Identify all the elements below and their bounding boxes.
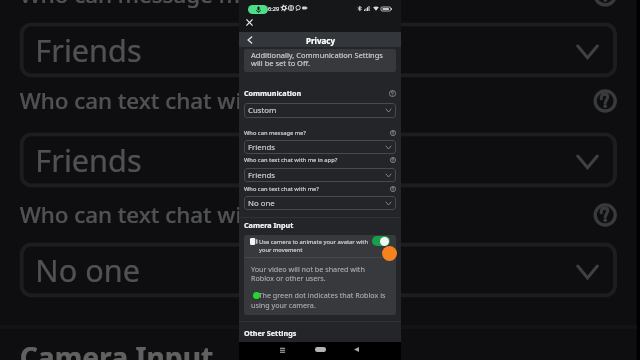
staticText: Privacy (306, 35, 335, 46)
button[interactable]: More info (390, 186, 396, 192)
staticText: Other Settings (244, 328, 297, 338)
button[interactable]: Recents (280, 347, 286, 353)
button[interactable]: More info (593, 203, 617, 227)
staticText: Who can message me? (244, 129, 306, 137)
staticText: Your video will not be shared with Roblo… (251, 264, 389, 283)
button[interactable]: Back (245, 35, 255, 45)
button[interactable]: No one (20, 242, 617, 297)
button[interactable]: More info (390, 157, 396, 163)
button[interactable]: More info (593, 89, 617, 113)
staticText: Communication (244, 88, 302, 98)
staticText: Who can text chat with me in app? (20, 85, 389, 117)
button[interactable]: Home (315, 347, 326, 352)
staticText: Camera Input (244, 220, 294, 230)
staticText: No one (248, 198, 275, 209)
button[interactable]: Back (354, 347, 359, 352)
button[interactable]: Friends (20, 132, 617, 187)
button[interactable]: Close (244, 17, 255, 28)
staticText: Who can text chat with me in app? (244, 156, 338, 164)
staticText: Who can text chat with me? (244, 185, 319, 193)
staticText: Use camera to animate your avatar with y… (259, 238, 369, 254)
staticText: Who can text chat with me? (20, 199, 314, 231)
button[interactable]: Friends (244, 168, 396, 182)
button[interactable]: Use camera toggle (372, 236, 390, 246)
button[interactable]: Friends (20, 22, 617, 77)
staticText: Additionally, Communication Settings wil… (251, 50, 385, 68)
staticText: Friends (248, 170, 276, 181)
button[interactable]: Friends (244, 140, 396, 154)
staticText: Friends (35, 140, 145, 183)
staticText: Custom (248, 105, 277, 116)
button[interactable]: More info (389, 90, 396, 97)
staticText: No one (35, 250, 141, 293)
button[interactable]: Custom (244, 103, 396, 118)
staticText: Friends (248, 142, 276, 153)
button[interactable]: More info (593, 0, 617, 7)
staticText: Friends (35, 30, 145, 73)
button[interactable]: More info (390, 130, 396, 136)
staticText: Who can message me? (20, 0, 263, 11)
staticText: The green dot indicates that Roblox is u… (251, 290, 393, 310)
staticText: 6:29 (268, 5, 280, 13)
staticText: Camera Input (20, 337, 216, 360)
button[interactable]: Recording indicator (382, 246, 397, 261)
button[interactable]: No one (244, 196, 396, 210)
